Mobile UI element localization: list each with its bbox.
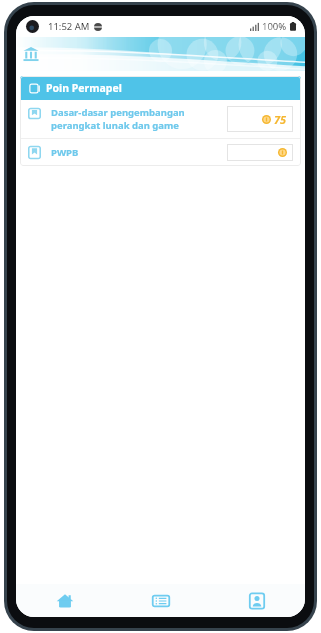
button[interactable]: List	[113, 584, 209, 617]
button[interactable]: Dasar-dasar pengembangan perangkat lunak…	[20, 100, 301, 138]
button[interactable]: Home	[16, 584, 113, 617]
staticText: 75	[274, 112, 287, 127]
staticText: 100%	[262, 20, 287, 33]
staticText: Dasar-dasar pengembangan perangkat lunak…	[51, 106, 221, 132]
staticText: Poin Permapel	[46, 81, 122, 95]
staticText: PWPB	[51, 146, 221, 159]
staticText: 11:52 AM	[48, 20, 90, 33]
button[interactable]: Profile	[209, 584, 305, 617]
button[interactable]: Poin Permapel	[20, 76, 301, 100]
button[interactable]: PWPB	[20, 139, 301, 166]
